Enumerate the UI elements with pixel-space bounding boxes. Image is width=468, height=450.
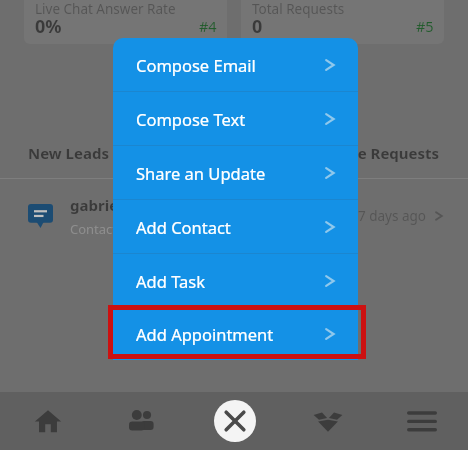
staticText: Contact — [70, 220, 118, 238]
staticText: #5 — [416, 16, 434, 36]
button[interactable]: Share an Update — [113, 146, 358, 200]
staticText: Compose Text — [136, 108, 246, 130]
staticText: #4 — [199, 16, 217, 36]
button[interactable]: More — [375, 392, 468, 450]
button[interactable]: Live Chat Answer Rate — [24, 0, 227, 44]
staticText: Share an Update — [136, 162, 266, 184]
button[interactable]: Compose Email — [113, 38, 358, 92]
staticText: Add Contact — [136, 216, 231, 238]
staticText: gabriel — [70, 195, 123, 215]
staticText: Service Requests — [313, 143, 440, 163]
staticText: Add Task — [136, 270, 205, 292]
button[interactable]: gabriel — [0, 185, 468, 247]
staticText: Total Requests — [252, 0, 345, 18]
staticText: Compose Email — [136, 54, 256, 76]
staticText: 7 days ago — [358, 207, 427, 225]
staticText: Add Appointment — [136, 323, 274, 345]
button[interactable]: Add Appointment — [113, 308, 358, 360]
button[interactable]: Compose Text — [113, 92, 358, 146]
button[interactable]: Home — [1, 392, 94, 450]
button[interactable]: Total Requests — [241, 0, 444, 44]
button[interactable]: Add Contact — [113, 200, 358, 254]
staticText: New Leads — [28, 143, 109, 163]
button[interactable]: Close menu — [188, 392, 281, 450]
staticText: 0% — [35, 14, 62, 39]
button[interactable]: Add Task — [113, 254, 358, 308]
staticText: Live Chat Answer Rate — [35, 0, 176, 18]
staticText: 0 — [252, 14, 263, 39]
button[interactable]: Products — [281, 392, 374, 450]
button[interactable]: Contacts — [94, 392, 187, 450]
